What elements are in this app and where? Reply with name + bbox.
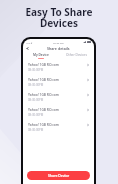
staticText: 08:30:00PM <box>28 128 44 132</box>
staticText: Easy To Share Devices <box>0 5 118 30</box>
staticText: Share details <box>47 46 70 51</box>
staticText: 08:30:00PM <box>28 83 44 87</box>
staticText: Yahoo! 1GB RO.com <box>28 107 59 111</box>
button[interactable]: Back <box>25 46 30 51</box>
staticText: Yahoo! 1GB RO.com <box>28 122 59 126</box>
staticText: Share Device <box>48 173 70 178</box>
button[interactable]: Share Device <box>27 171 90 180</box>
staticText: 08:30:00PM <box>28 68 44 72</box>
staticText: Yahoo! 1GB RO.com <box>28 62 59 66</box>
button[interactable]: Yahoo! 1GB RO.com <box>23 92 94 107</box>
button[interactable]: Yahoo! 1GB RO.com <box>23 107 94 122</box>
staticText: 08:30:00PM <box>28 113 44 117</box>
staticText: ••••• ▾ <box>26 41 33 44</box>
staticText: 10.47 AM <box>53 41 64 44</box>
staticText: Yahoo! 1GB RO.com <box>28 92 59 96</box>
staticText: Yahoo! 1GB RO.com <box>28 77 59 81</box>
button[interactable]: Yahoo! 1GB RO.com <box>23 77 94 92</box>
button[interactable]: Yahoo! 1GB RO.com <box>23 62 94 77</box>
button[interactable]: Yahoo! 1GB RO.com <box>23 122 94 137</box>
button[interactable]: My Device <box>23 53 58 59</box>
staticText: Other Devices <box>66 53 87 57</box>
staticText: My Device <box>33 53 49 57</box>
staticText: 08:30:00PM <box>28 98 44 102</box>
button[interactable]: Other Devices <box>58 53 94 59</box>
